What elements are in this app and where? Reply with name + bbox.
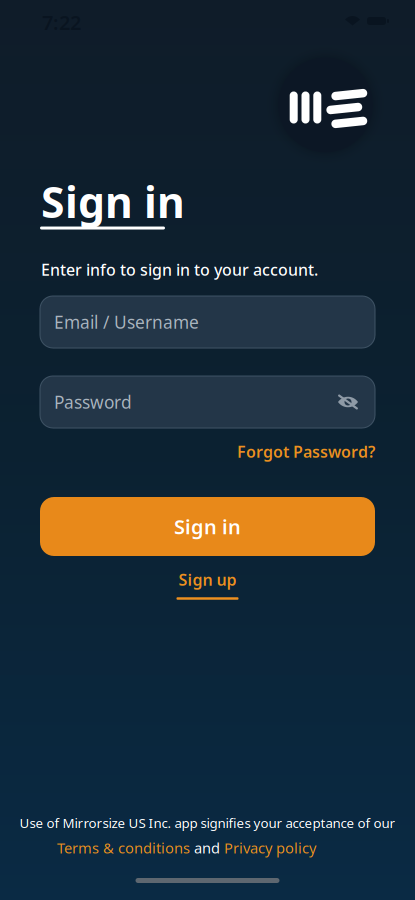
button[interactable]: Email / Username <box>40 296 375 348</box>
staticText: Terms & conditions <box>57 838 190 857</box>
button[interactable]: Privacy policy <box>224 838 316 857</box>
staticText: Enter info to sign in to your account. <box>41 259 318 280</box>
staticText: Email / Username <box>54 310 199 333</box>
staticText: Sign in <box>174 513 241 540</box>
staticText: Sign in <box>41 173 185 230</box>
button[interactable]: Terms & conditions <box>57 838 190 857</box>
staticText: Password <box>54 390 132 413</box>
staticText: Forgot Password? <box>237 441 375 462</box>
button[interactable]: Password <box>40 376 375 428</box>
button[interactable]: Forgot Password? <box>237 441 375 462</box>
staticText: Sign up <box>178 569 236 590</box>
staticText: Privacy policy <box>224 838 316 857</box>
button[interactable]: Sign up <box>176 569 238 600</box>
staticText: 7:22 <box>42 9 81 36</box>
staticText: Use of Mirrorsize US Inc. app signifies … <box>19 814 395 832</box>
button[interactable]: Sign in <box>40 497 375 556</box>
staticText: and <box>190 838 224 857</box>
